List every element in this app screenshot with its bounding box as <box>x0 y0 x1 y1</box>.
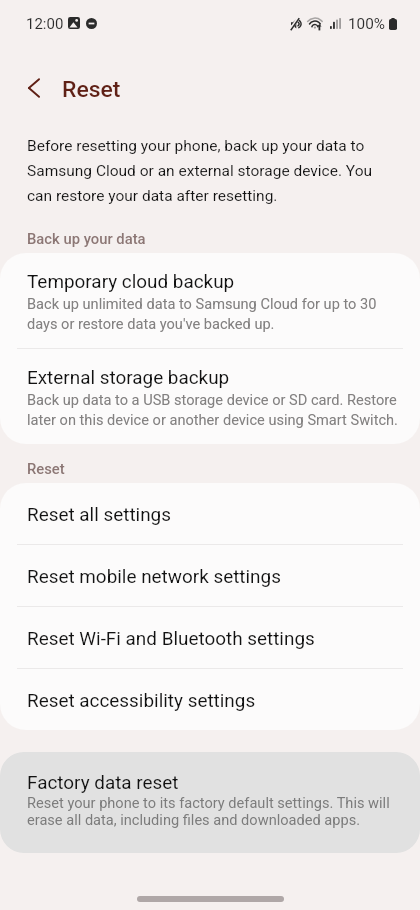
button[interactable]: External storage backup <box>0 349 420 444</box>
button[interactable]: Reset all settings <box>0 483 420 544</box>
button[interactable]: Reset mobile network settings <box>0 545 420 606</box>
staticText: Factory data reset <box>27 769 179 794</box>
staticText: Reset accessibility settings <box>27 687 256 712</box>
staticText: Reset mobile network settings <box>27 563 281 588</box>
button[interactable]: Factory data reset <box>0 752 420 853</box>
staticText: Reset <box>27 458 65 478</box>
staticText: 12:00 <box>26 13 64 33</box>
staticText: Before resetting your phone, back up you… <box>27 131 400 206</box>
staticText: Back up your data <box>27 228 146 248</box>
staticText: Temporary cloud backup <box>27 268 235 293</box>
staticText: Reset all settings <box>27 501 171 526</box>
staticText: Reset <box>62 73 121 104</box>
staticText: 100% <box>348 13 385 34</box>
staticText: Reset Wi-Fi and Bluetooth settings <box>27 625 315 650</box>
staticText: External storage backup <box>27 364 230 389</box>
button[interactable]: Reset Wi-Fi and Bluetooth settings <box>0 607 420 668</box>
staticText: Back up data to a USB storage device or … <box>27 389 398 429</box>
button[interactable]: Back <box>9 65 55 111</box>
button[interactable]: Reset accessibility settings <box>0 669 420 730</box>
staticText: Back up unlimited data to Samsung Cloud … <box>27 293 398 333</box>
staticText: Reset your phone to its factory default … <box>27 794 398 828</box>
button[interactable]: Temporary cloud backup <box>0 253 420 348</box>
